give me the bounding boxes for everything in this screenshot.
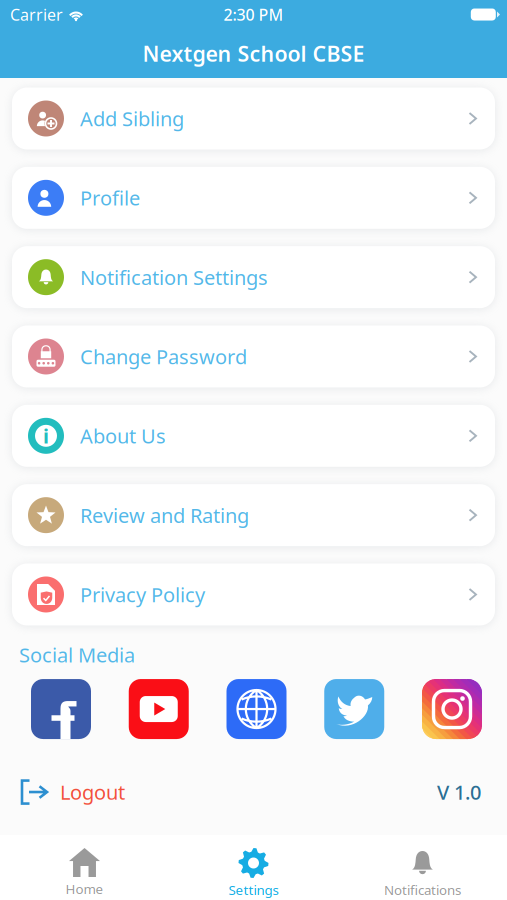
staticText: Social Media [19,641,135,668]
button[interactable]: YouTube [129,679,189,739]
button[interactable]: Review and Rating [12,484,495,546]
button[interactable]: Instagram [422,679,482,739]
button[interactable]: Notification Settings [12,246,495,308]
button[interactable]: Settings [169,835,338,900]
staticText: Review and Rating [80,502,249,528]
staticText: Profile [80,185,140,211]
staticText: Carrier [10,4,63,25]
staticText: Logout [60,779,125,805]
staticText: Add Sibling [80,105,184,132]
staticText: i [43,422,49,449]
staticText: Notification Settings [80,264,268,290]
staticText: V 1.0 [437,779,481,805]
button[interactable]: Profile [12,167,495,229]
staticText: Change Password [80,343,247,370]
button[interactable]: Home [0,835,169,900]
button[interactable]: Add Sibling [12,87,495,149]
button[interactable]: Change Password [12,325,495,387]
button[interactable]: Website [226,679,286,739]
staticText: Privacy Policy [80,581,205,608]
button[interactable]: Privacy Policy [12,563,495,625]
staticText: About Us [80,422,166,449]
staticText: Notifications [384,881,461,899]
button[interactable]: Notifications [338,835,507,900]
staticText: 2:30 PM [223,4,283,25]
button[interactable]: V 1.0 [437,779,481,805]
staticText: Home [65,880,103,898]
button[interactable]: Twitter [324,679,384,739]
staticText: Nextgen School CBSE [142,39,364,68]
button[interactable]: Logout [22,779,125,805]
button[interactable]: Facebook [31,679,91,739]
button[interactable]: i [12,405,495,467]
staticText: Settings [228,881,278,899]
